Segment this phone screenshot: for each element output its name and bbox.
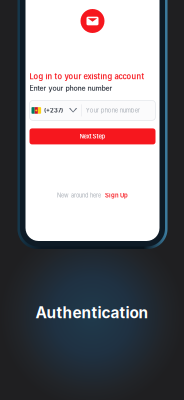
button[interactable]: Sign Up <box>105 192 128 199</box>
staticText: (+237) <box>44 107 63 114</box>
staticText: Log in to your existing account <box>29 72 144 81</box>
staticText: New around here <box>57 192 101 199</box>
staticText: Sign Up <box>105 192 128 199</box>
button[interactable]: (+237) <box>29 100 155 120</box>
button[interactable]: Next Step <box>29 128 155 144</box>
staticText: Next Step <box>79 133 105 140</box>
staticText: Your phone number <box>86 107 140 114</box>
staticText: Enter your phone number <box>29 84 112 92</box>
staticText: Authentication <box>35 303 148 322</box>
